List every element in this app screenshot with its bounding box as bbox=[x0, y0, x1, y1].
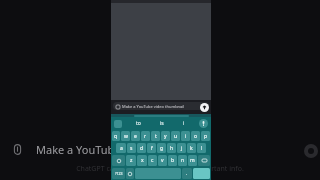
staticText: a bbox=[120, 145, 123, 152]
staticText: u bbox=[174, 133, 178, 140]
button[interactable]: c bbox=[148, 155, 157, 166]
button[interactable]: f bbox=[147, 143, 156, 153]
button[interactable]: h bbox=[167, 143, 176, 153]
button[interactable]: d bbox=[137, 143, 146, 153]
button[interactable]: Emoji bbox=[126, 168, 134, 179]
other: Attach bbox=[115, 104, 120, 109]
button[interactable]: k bbox=[187, 143, 196, 153]
staticText: e bbox=[134, 133, 137, 140]
button[interactable]: Attach file bbox=[10, 140, 162, 158]
staticText: f bbox=[151, 145, 153, 152]
button[interactable]: z bbox=[126, 155, 136, 166]
button[interactable]: p bbox=[201, 131, 210, 141]
button[interactable]: Backspace bbox=[198, 155, 210, 166]
other: Attach file bbox=[10, 142, 24, 156]
button[interactable]: Keyboard options bbox=[114, 120, 122, 128]
staticText: ?123 bbox=[115, 171, 123, 176]
button[interactable]: s bbox=[127, 143, 136, 153]
staticText: v bbox=[161, 157, 164, 164]
button[interactable]: is bbox=[160, 120, 164, 127]
button[interactable]: Send bbox=[304, 144, 318, 158]
button[interactable]: Enter bbox=[193, 168, 210, 179]
button[interactable]: l bbox=[197, 143, 206, 153]
button[interactable]: Send message bbox=[200, 103, 209, 112]
staticText: j bbox=[181, 145, 183, 152]
button[interactable]: t bbox=[151, 131, 160, 141]
staticText: m bbox=[190, 157, 195, 164]
button[interactable]: Shift bbox=[112, 155, 125, 166]
staticText: g bbox=[160, 145, 164, 152]
button[interactable]: b bbox=[168, 155, 177, 166]
button[interactable]: w bbox=[121, 131, 130, 141]
button[interactable]: m bbox=[188, 155, 197, 166]
button[interactable]: j bbox=[177, 143, 186, 153]
staticText: w bbox=[124, 133, 128, 140]
button[interactable]: n bbox=[178, 155, 187, 166]
staticText: . bbox=[186, 170, 188, 177]
staticText: b bbox=[171, 157, 175, 164]
staticText: h bbox=[170, 145, 174, 152]
button[interactable]: o bbox=[191, 131, 200, 141]
button[interactable]: i bbox=[181, 131, 190, 141]
button[interactable]: Voice input bbox=[199, 119, 208, 128]
staticText: n bbox=[181, 157, 185, 164]
staticText: i bbox=[185, 133, 187, 140]
staticText: o bbox=[194, 133, 198, 140]
button[interactable]: Symbols bbox=[112, 168, 125, 179]
staticText: x bbox=[141, 157, 144, 164]
button[interactable]: e bbox=[131, 131, 140, 141]
button[interactable]: y bbox=[161, 131, 170, 141]
button[interactable]: i bbox=[183, 120, 185, 127]
staticText: z bbox=[130, 157, 133, 164]
button[interactable]: v bbox=[158, 155, 167, 166]
button[interactable]: . bbox=[182, 168, 192, 179]
staticText: c bbox=[151, 157, 154, 164]
button[interactable]: Attach bbox=[113, 102, 209, 110]
button[interactable]: u bbox=[171, 131, 180, 141]
button[interactable]: r bbox=[141, 131, 150, 141]
staticText: y bbox=[164, 133, 167, 140]
staticText: s bbox=[130, 145, 133, 152]
staticText: Make a YouTube video thumbnail bbox=[122, 104, 185, 109]
button[interactable]: x bbox=[137, 155, 147, 166]
staticText: p bbox=[204, 133, 208, 140]
button[interactable]: g bbox=[157, 143, 166, 153]
staticText: k bbox=[190, 145, 193, 152]
staticText: q bbox=[114, 133, 118, 140]
staticText: ChatGPT can make mistakes. Check importa… bbox=[76, 164, 244, 174]
button[interactable]: to bbox=[136, 120, 141, 127]
staticText: r bbox=[144, 133, 147, 140]
button[interactable]: q bbox=[112, 131, 120, 141]
staticText: t bbox=[155, 133, 157, 140]
staticText: l bbox=[201, 145, 203, 152]
button[interactable]: a bbox=[116, 143, 126, 153]
staticText: d bbox=[140, 145, 144, 152]
staticText: Make a YouTube video b bbox=[36, 142, 162, 157]
